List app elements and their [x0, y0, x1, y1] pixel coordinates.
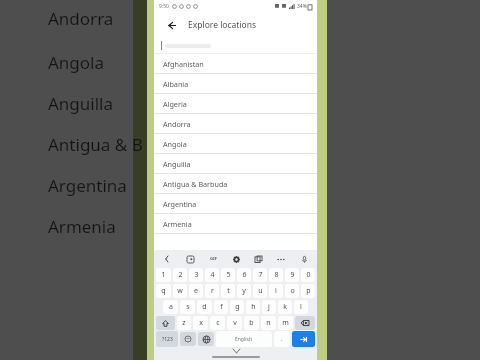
button[interactable]: 6	[237, 268, 251, 282]
button[interactable]: Language	[198, 332, 214, 346]
staticText: e	[194, 286, 198, 296]
staticText: n	[266, 318, 271, 328]
button[interactable]: u	[253, 284, 267, 298]
button[interactable]: English	[216, 331, 272, 347]
button[interactable]: i	[269, 284, 283, 298]
staticText: b	[249, 318, 254, 328]
button[interactable]: Algeria	[154, 94, 317, 113]
staticText: y	[242, 286, 246, 296]
button[interactable]: o	[285, 284, 299, 298]
button[interactable]: Backspace	[295, 316, 315, 330]
staticText: 9:50	[159, 3, 169, 10]
button[interactable]: n	[261, 316, 276, 330]
staticText: Armenia	[48, 215, 116, 238]
button[interactable]: a	[163, 300, 178, 314]
staticText: Andorra	[163, 119, 191, 129]
button[interactable]: Clipboard	[251, 252, 265, 266]
staticText: Argentina	[48, 174, 127, 197]
button[interactable]: 7	[253, 268, 267, 282]
button[interactable]: Argentina	[154, 194, 317, 213]
staticText: x	[199, 318, 203, 328]
button[interactable]: 1	[156, 268, 171, 282]
button[interactable]: x	[193, 316, 208, 330]
button[interactable]: l	[294, 300, 308, 314]
button[interactable]: r	[205, 284, 219, 298]
staticText: q	[161, 286, 166, 296]
button[interactable]: GIF	[206, 252, 220, 266]
button[interactable]: Afghanistan	[154, 54, 317, 73]
button[interactable]: 9	[285, 268, 299, 282]
button[interactable]: e	[189, 284, 203, 298]
button[interactable]: 2	[173, 268, 187, 282]
button[interactable]: g	[230, 300, 244, 314]
staticText: Armenia	[163, 219, 192, 229]
staticText: s	[186, 302, 190, 312]
staticText: Algeria	[163, 99, 187, 109]
button[interactable]: More	[274, 252, 288, 266]
button[interactable]: 3	[189, 268, 203, 282]
staticText: j	[268, 302, 270, 312]
button[interactable]: c	[210, 316, 225, 330]
staticText: 34%	[297, 3, 307, 10]
staticText: c	[216, 318, 220, 328]
staticText: t	[227, 286, 230, 296]
button[interactable]: s	[180, 300, 195, 314]
button[interactable]: 4	[205, 268, 219, 282]
staticText: 1	[161, 270, 166, 280]
staticText: GIF	[210, 256, 217, 262]
button[interactable]: w	[173, 284, 187, 298]
button[interactable]: Search	[292, 331, 315, 347]
button[interactable]: Armenia	[154, 214, 317, 233]
staticText: f	[220, 302, 223, 312]
staticText: a	[169, 302, 173, 312]
button[interactable]: d	[197, 300, 212, 314]
staticText: Antigua & B	[48, 133, 143, 156]
button[interactable]: Voice input	[297, 252, 311, 266]
button[interactable]: 0	[301, 268, 315, 282]
staticText: Anguilla	[163, 159, 191, 169]
button[interactable]: h	[246, 300, 260, 314]
staticText: d	[202, 302, 207, 312]
button[interactable]: Back	[160, 252, 174, 266]
button[interactable]: f	[214, 300, 228, 314]
staticText: 5	[226, 270, 231, 280]
button[interactable]	[161, 37, 307, 53]
button[interactable]: v	[227, 316, 242, 330]
staticText: r	[211, 286, 214, 296]
button[interactable]: ?123	[156, 331, 178, 347]
staticText: v	[233, 318, 237, 328]
staticText: Albania	[163, 79, 189, 89]
button[interactable]: Anguilla	[154, 154, 317, 173]
button[interactable]: m	[278, 316, 293, 330]
button[interactable]: Back	[162, 16, 180, 34]
button[interactable]: k	[278, 300, 292, 314]
button[interactable]: Emoji	[180, 332, 196, 346]
staticText: Andorra	[48, 7, 114, 30]
staticText: m	[282, 318, 289, 328]
button[interactable]: Albania	[154, 74, 317, 93]
button[interactable]: Andorra	[154, 114, 317, 133]
staticText: h	[251, 302, 256, 312]
button[interactable]: 8	[269, 268, 283, 282]
staticText: Afghanistan	[163, 59, 204, 69]
button[interactable]: y	[237, 284, 251, 298]
staticText: Anguilla	[48, 92, 114, 115]
staticText: Explore locations	[188, 19, 257, 31]
staticText: 9	[290, 270, 295, 280]
button[interactable]: b	[244, 316, 259, 330]
button[interactable]: Settings	[229, 252, 243, 266]
staticText: i	[275, 286, 277, 296]
button[interactable]: 5	[221, 268, 235, 282]
button[interactable]: z	[177, 316, 191, 330]
button[interactable]: .	[274, 331, 290, 347]
button[interactable]: t	[221, 284, 235, 298]
button[interactable]: q	[156, 284, 171, 298]
staticText: 6	[242, 270, 247, 280]
staticText: 7	[258, 270, 263, 280]
button[interactable]: Stickers	[183, 252, 197, 266]
button[interactable]: j	[262, 300, 276, 314]
button[interactable]: Angola	[154, 134, 317, 153]
button[interactable]: Shift	[156, 316, 175, 330]
button[interactable]: Antigua & Barbuda	[154, 174, 317, 193]
button[interactable]: p	[301, 284, 315, 298]
